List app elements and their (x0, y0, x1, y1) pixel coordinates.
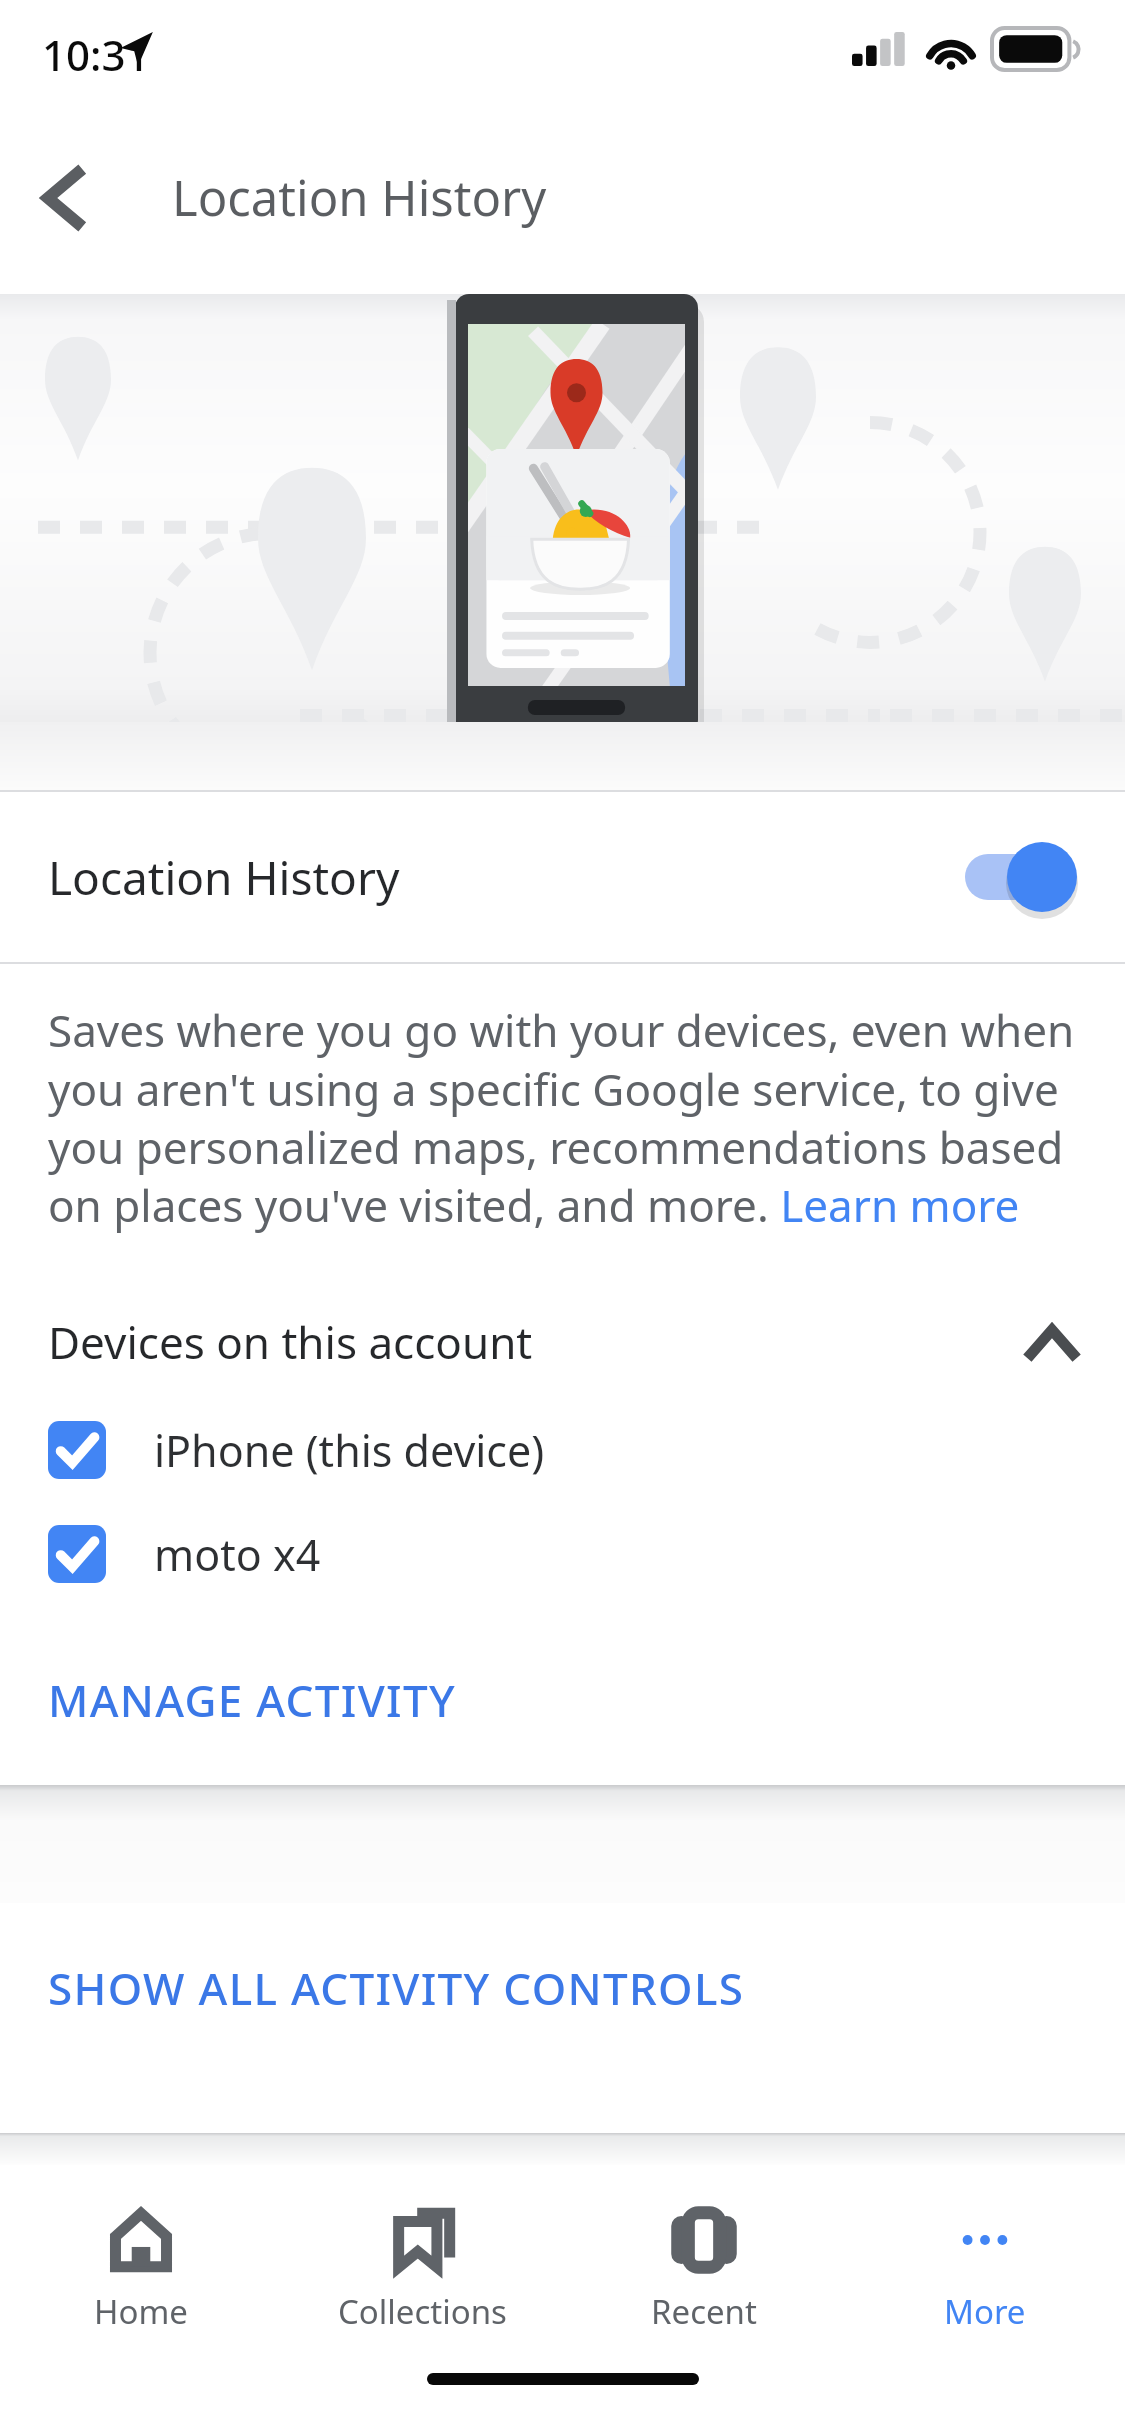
staticText: Location History (172, 164, 547, 231)
button[interactable]: Devices on this account (0, 1297, 1125, 1387)
staticText: Saves where you go with your devices, ev… (48, 1000, 1080, 1234)
button[interactable]: MANAGE ACTIVITY (0, 1640, 1125, 1760)
staticText: 10:31 (42, 26, 150, 83)
staticText: SHOW ALL ACTIVITY CONTROLS (48, 1958, 745, 2018)
staticText: Devices on this account (48, 1312, 1027, 1372)
button[interactable]: Collections (282, 2165, 563, 2355)
button[interactable]: Back (14, 148, 114, 248)
staticText: Home (94, 2289, 188, 2334)
staticText: moto x4 (154, 1525, 321, 1584)
staticText: MANAGE ACTIVITY (48, 1670, 456, 1730)
button[interactable]: More (844, 2165, 1125, 2355)
button[interactable]: moto x4 (0, 1506, 1125, 1602)
staticText: More (944, 2289, 1026, 2334)
staticText: iPhone (this device) (154, 1421, 545, 1480)
staticText: Recent (651, 2289, 757, 2334)
button[interactable]: Home (0, 2165, 282, 2355)
staticText: Location History (48, 846, 965, 909)
button[interactable]: Recent (563, 2165, 844, 2355)
staticText: Collections (338, 2289, 507, 2334)
button[interactable]: SHOW ALL ACTIVITY CONTROLS (0, 1918, 1125, 2058)
button[interactable]: Location History (0, 792, 1125, 962)
button[interactable]: iPhone (this device) (0, 1402, 1125, 1498)
